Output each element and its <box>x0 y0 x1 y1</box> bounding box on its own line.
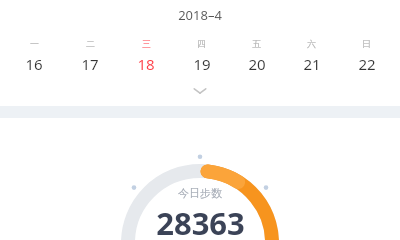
staticText: 22 <box>358 54 376 74</box>
staticText: 21 <box>303 54 321 74</box>
staticText: 16 <box>25 54 43 74</box>
staticText: 三 <box>142 38 151 49</box>
staticText: 五 <box>252 38 261 49</box>
staticText: 17 <box>81 54 99 74</box>
button[interactable]: 二 <box>62 38 118 74</box>
staticText: 今日步数 <box>178 186 222 200</box>
staticText: 四 <box>197 38 206 49</box>
button[interactable]: 四 <box>174 38 229 74</box>
staticText: 一 <box>30 38 39 49</box>
staticText: 19 <box>193 54 211 74</box>
staticText: 二 <box>86 38 95 49</box>
button[interactable]: 五 <box>229 38 284 74</box>
button[interactable]: 日 <box>339 38 394 74</box>
staticText: 六 <box>307 38 316 49</box>
button[interactable]: Expand calendar <box>0 82 400 100</box>
staticText: 日 <box>362 38 371 49</box>
staticText: 18 <box>137 54 155 74</box>
staticText: 20 <box>248 54 266 74</box>
staticText: 2018–4 <box>178 6 222 24</box>
button[interactable]: 六 <box>284 38 339 74</box>
button[interactable]: 2018–4 <box>0 0 400 30</box>
staticText: 28363 <box>156 202 245 240</box>
button[interactable]: 三 <box>118 38 174 74</box>
button[interactable]: 一 <box>6 38 62 74</box>
button[interactable]: 今日步数 <box>0 186 400 240</box>
